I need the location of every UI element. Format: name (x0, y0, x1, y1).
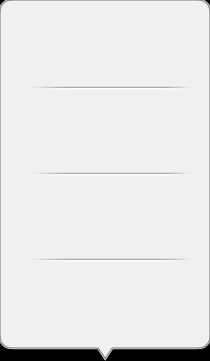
button[interactable]: Second item (0, 89, 210, 172)
button[interactable]: Fourth item (0, 261, 210, 348)
button[interactable]: Third item (0, 175, 210, 258)
button[interactable]: First item (0, 0, 210, 86)
